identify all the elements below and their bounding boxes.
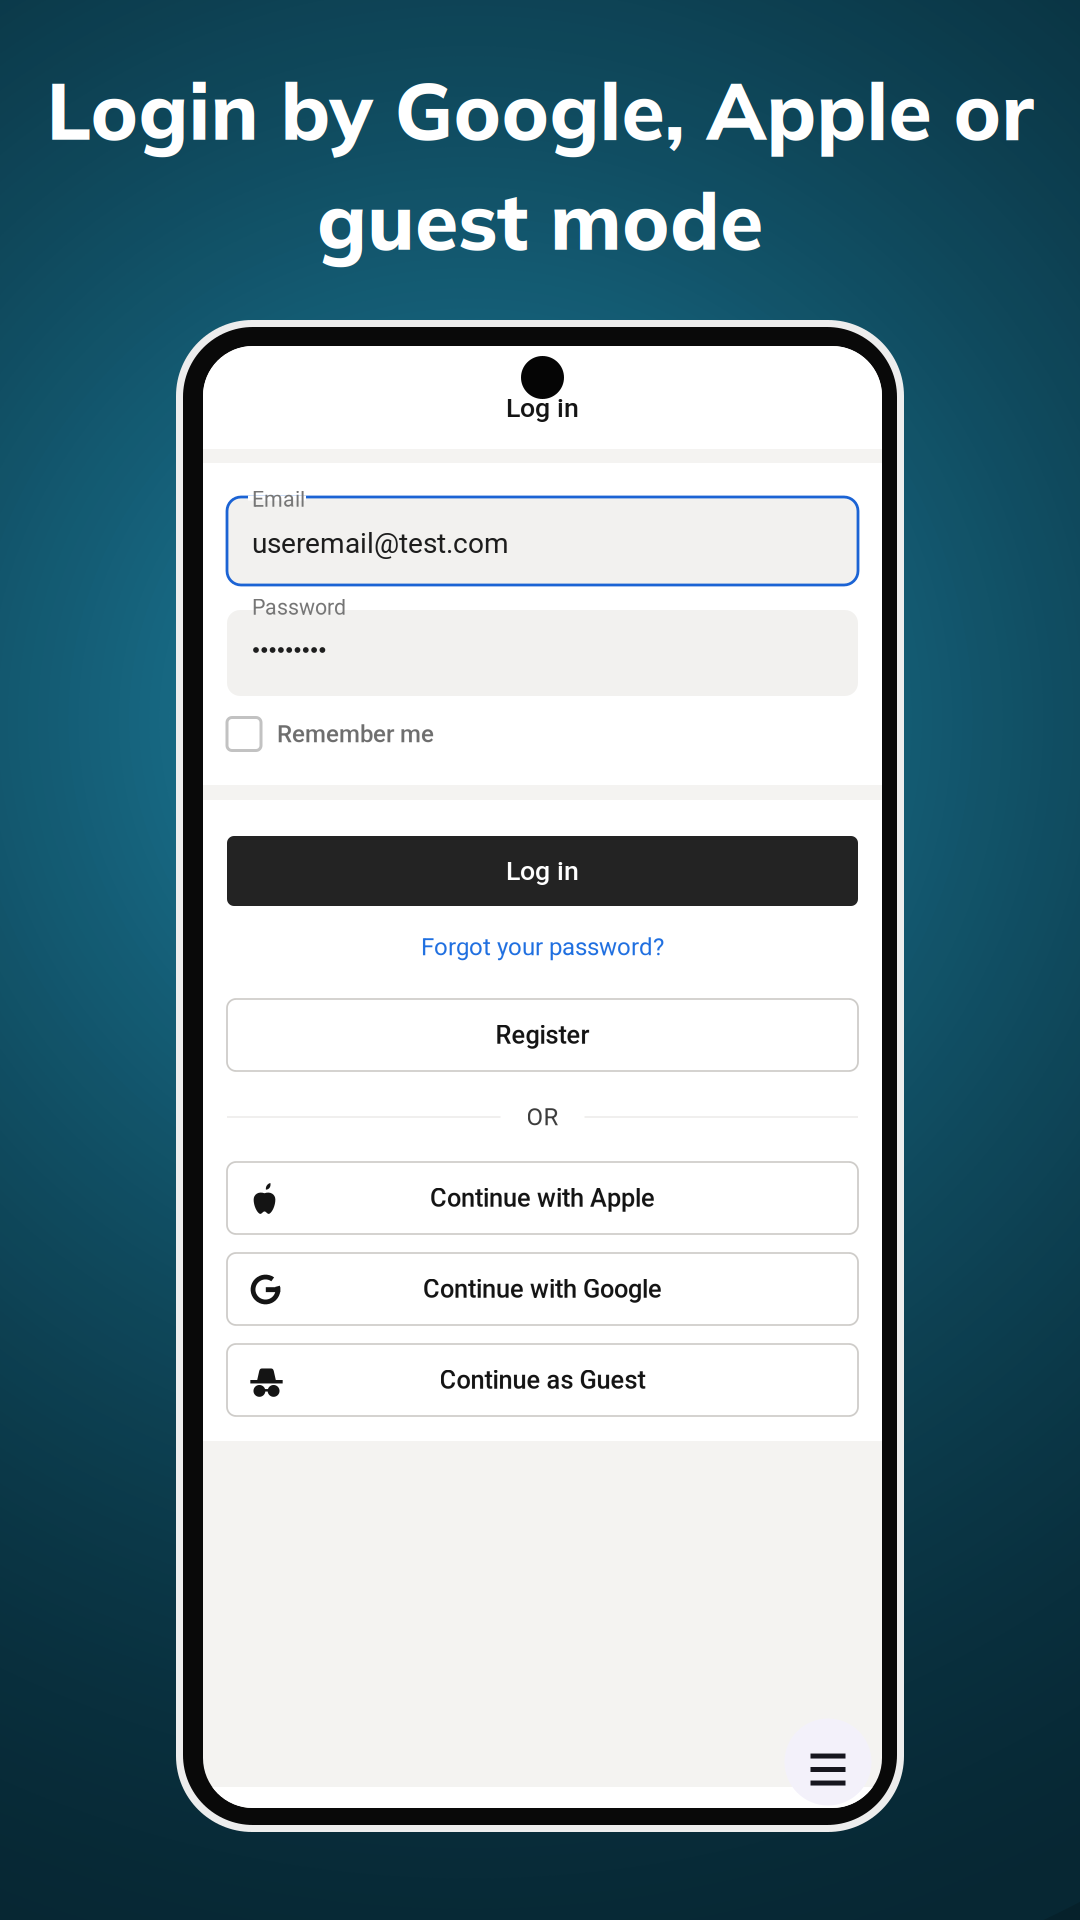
staticText: Login by Google, Apple or	[46, 61, 1033, 159]
staticText: Register	[495, 1020, 589, 1050]
button[interactable]: Menu	[784, 1718, 871, 1805]
staticText: guest mode	[317, 171, 763, 269]
button[interactable]: Register	[227, 999, 858, 1071]
staticText: Log in	[506, 392, 579, 424]
staticText: Forgot your password?	[421, 933, 664, 961]
button[interactable]: Forgot your password?	[227, 920, 858, 974]
staticText: Email	[252, 487, 305, 512]
staticText: useremail@test.com	[252, 527, 509, 560]
staticText: Continue with Google	[423, 1274, 662, 1304]
button[interactable]: Log in	[227, 836, 858, 906]
staticText: Remember me	[277, 720, 434, 748]
staticText: OR	[526, 1103, 558, 1131]
button[interactable]: Remember me	[227, 714, 858, 754]
button[interactable]: Continue with Google	[227, 1253, 858, 1325]
button[interactable]: Continue as Guest	[227, 1344, 858, 1416]
staticText: Password	[252, 595, 346, 620]
staticText: Continue with Apple	[430, 1183, 655, 1213]
staticText: Continue as Guest	[439, 1365, 645, 1395]
staticText: Log in	[506, 855, 579, 887]
button[interactable]: Continue with Apple	[227, 1162, 858, 1234]
